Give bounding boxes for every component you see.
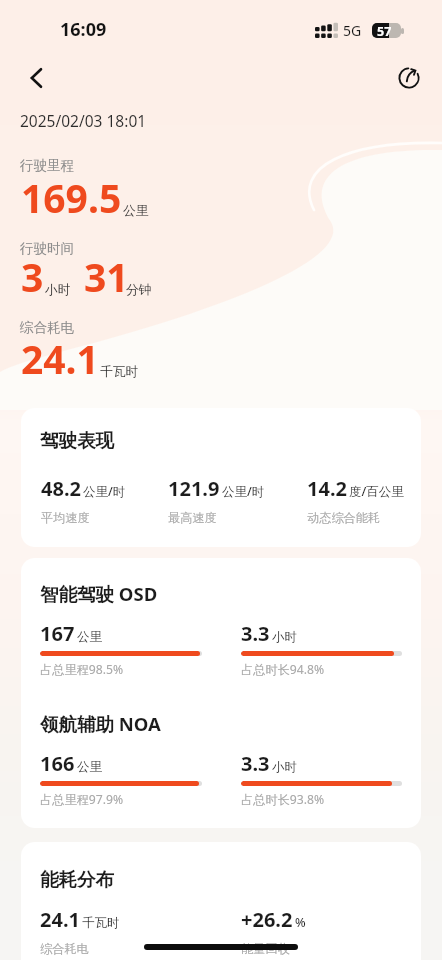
staticText: 占总里程98.5%	[40, 661, 124, 678]
button[interactable]: Back	[17, 58, 57, 98]
staticText: 5G	[343, 21, 362, 40]
staticText: 169.5	[21, 171, 122, 224]
staticText: 千瓦时	[100, 364, 139, 380]
staticText: 3.3	[241, 620, 270, 647]
staticText: 行驶里程	[20, 157, 74, 174]
staticText: 16:09	[60, 17, 107, 42]
staticText: 公里	[123, 203, 149, 219]
staticText: 能耗分布	[40, 868, 114, 891]
staticText: 驾驶表现	[40, 429, 114, 452]
staticText: 3.3	[241, 750, 270, 777]
staticText: 平均速度	[41, 510, 90, 525]
staticText: 千瓦时	[82, 915, 120, 931]
staticText: 综合耗电	[40, 941, 89, 956]
staticText: 3	[21, 250, 44, 303]
staticText: 动态综合能耗	[307, 510, 381, 525]
staticText: +26.2	[241, 906, 293, 933]
staticText: 小时	[272, 629, 297, 645]
staticText: 智能驾驶 OSD	[40, 581, 158, 606]
staticText: 占总里程97.9%	[40, 791, 124, 808]
staticText: 57	[377, 23, 392, 38]
staticText: 24.1	[40, 906, 80, 933]
button[interactable]: Share	[389, 58, 429, 98]
staticText: 领航辅助 NOA	[40, 711, 161, 736]
staticText: 行驶时间	[20, 240, 74, 257]
staticText: 小时	[45, 282, 71, 298]
staticText: 小时	[272, 759, 297, 775]
staticText: 综合耗电	[20, 319, 74, 336]
staticText: 166	[40, 750, 75, 777]
staticText: 占总时长93.8%	[241, 791, 325, 808]
staticText: %	[295, 914, 306, 931]
staticText: 公里/时	[83, 483, 126, 500]
staticText: 121.9	[168, 475, 220, 502]
staticText: 分钟	[126, 282, 152, 298]
staticText: 最高速度	[168, 510, 217, 525]
staticText: 占总时长94.8%	[241, 661, 325, 678]
staticText: 2025/02/03 18:01	[20, 110, 147, 131]
staticText: 31	[84, 250, 129, 303]
staticText: 14.2	[307, 475, 347, 502]
staticText: 公里	[77, 629, 102, 645]
staticText: 167	[40, 620, 75, 647]
staticText: 公里/时	[222, 483, 265, 500]
staticText: 能量回收	[241, 941, 290, 956]
staticText: 24.1	[21, 332, 99, 385]
staticText: 48.2	[41, 475, 81, 502]
staticText: 度/百公里	[349, 483, 404, 500]
staticText: 公里	[77, 759, 102, 775]
